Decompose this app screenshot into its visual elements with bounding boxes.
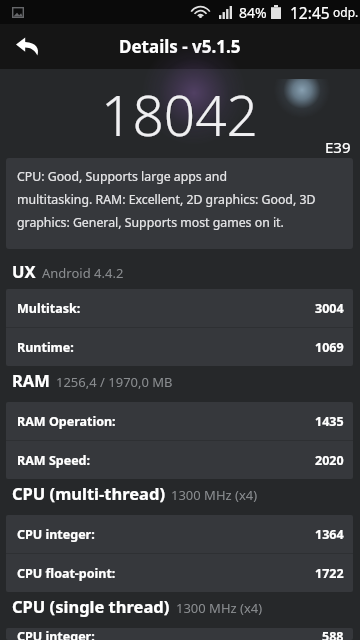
staticText: 1069 [315, 339, 344, 356]
staticText: 1300 MHz (x4) [171, 486, 258, 504]
staticText: 18042 [101, 77, 259, 152]
staticText: 84% [239, 3, 267, 22]
staticText: Details - v5.1.5 [119, 35, 241, 58]
button[interactable]: Back [0, 24, 54, 69]
button[interactable]: RAM Operation: [6, 402, 353, 440]
staticText: E39 [325, 137, 351, 157]
staticText: CPU: Good, Supports large apps and multi… [17, 168, 316, 231]
staticText: Multitask: [17, 300, 81, 317]
staticText: UX [12, 260, 36, 282]
staticText: odp. [333, 4, 359, 20]
button[interactable]: RAM Speed: [6, 441, 353, 479]
button[interactable]: CPU float-point: [6, 554, 353, 592]
staticText: Android 4.4.2 [42, 264, 124, 282]
button[interactable]: Runtime: [6, 328, 353, 366]
staticText: 1300 MHz (x4) [176, 599, 263, 617]
staticText: CPU (multi-thread) [12, 482, 165, 504]
staticText: 1722 [315, 565, 344, 582]
staticText: CPU (single thread) [12, 595, 170, 617]
staticText: 18042 [102, 78, 260, 153]
staticText: CPU integer: [17, 526, 95, 543]
staticText: RAM Speed: [17, 452, 91, 469]
staticText: CPU float-point: [17, 565, 116, 582]
staticText: 588 [322, 628, 344, 640]
staticText: 1435 [315, 413, 344, 430]
button[interactable]: CPU integer: [6, 515, 353, 553]
staticText: 2020 [315, 452, 344, 469]
staticText: CPU integer: [17, 628, 95, 640]
staticText: 1364 [315, 526, 344, 543]
staticText: 3004 [315, 300, 344, 317]
staticText: RAM [12, 369, 50, 391]
button[interactable]: Multitask: [6, 289, 353, 327]
staticText: Runtime: [17, 339, 74, 356]
button[interactable]: CPU integer: [6, 628, 353, 640]
staticText: 1256,4 / 1970,0 MB [56, 373, 173, 391]
staticText: RAM Operation: [17, 413, 116, 430]
staticText: 12:45 [290, 2, 330, 23]
